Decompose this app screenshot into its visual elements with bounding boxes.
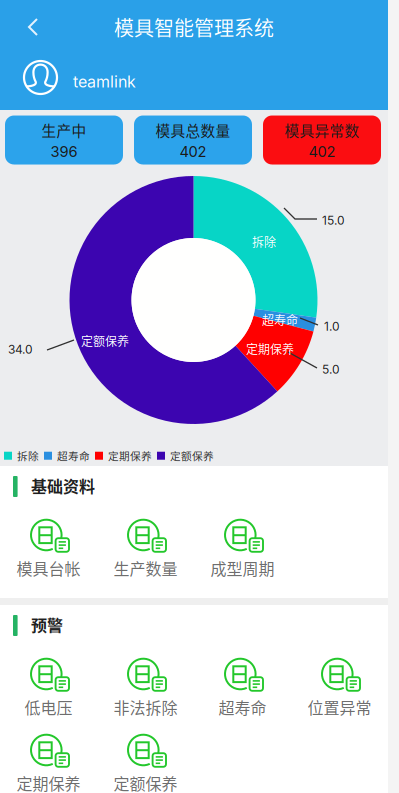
button[interactable]: Back bbox=[28, 18, 46, 36]
staticText: 定期保养 bbox=[16, 771, 80, 793]
button[interactable]: 成型周期 bbox=[194, 511, 291, 587]
button[interactable]: 位置异常 bbox=[291, 650, 388, 726]
button[interactable]: 超寿命 bbox=[194, 650, 291, 726]
staticText: 基础资料 bbox=[31, 474, 95, 497]
button[interactable]: 模具台帐 bbox=[0, 511, 97, 587]
button[interactable]: 模具异常数 bbox=[263, 115, 381, 164]
staticText: 低电压 bbox=[24, 695, 72, 719]
staticText: 34.0 bbox=[8, 342, 33, 356]
button[interactable]: 非法拆除 bbox=[97, 650, 194, 726]
staticText: 定期保养 bbox=[246, 340, 294, 357]
staticText: 定额保养 bbox=[81, 332, 129, 349]
staticText: 定期保养 bbox=[108, 448, 152, 463]
staticText: 拆除 bbox=[252, 233, 276, 250]
button[interactable]: 生产数量 bbox=[97, 511, 194, 587]
staticText: 402 bbox=[179, 143, 206, 160]
staticText: 定额保养 bbox=[170, 448, 214, 463]
button[interactable]: 定额保养 bbox=[97, 726, 194, 793]
staticText: 模具台帐 bbox=[16, 556, 80, 580]
button[interactable]: 模具总数量 bbox=[134, 115, 252, 164]
staticText: 超寿命 bbox=[57, 448, 90, 463]
staticText: 超寿命 bbox=[218, 695, 266, 719]
staticText: 拆除 bbox=[17, 448, 39, 463]
button[interactable]: 生产中 bbox=[5, 115, 123, 164]
staticText: 定额保养 bbox=[113, 771, 177, 793]
staticText: 生产数量 bbox=[113, 556, 177, 580]
staticText: 1.0 bbox=[324, 319, 340, 333]
staticText: 396 bbox=[50, 143, 77, 160]
button[interactable]: 低电压 bbox=[0, 650, 97, 726]
staticText: 位置异常 bbox=[307, 695, 371, 719]
staticText: 模具总数量 bbox=[155, 119, 230, 141]
staticText: 模具异常数 bbox=[284, 119, 359, 141]
staticText: 非法拆除 bbox=[113, 695, 177, 719]
staticText: 生产中 bbox=[41, 119, 86, 141]
staticText: 15.0 bbox=[322, 213, 345, 227]
button[interactable]: 定期保养 bbox=[0, 726, 97, 793]
staticText: teamlink bbox=[73, 72, 136, 91]
staticText: 成型周期 bbox=[210, 556, 274, 580]
staticText: 5.0 bbox=[322, 362, 340, 376]
staticText: 超寿命 bbox=[262, 311, 298, 328]
staticText: 402 bbox=[308, 143, 335, 160]
staticText: 模具智能管理系统 bbox=[114, 12, 274, 41]
staticText: 预警 bbox=[31, 613, 63, 636]
